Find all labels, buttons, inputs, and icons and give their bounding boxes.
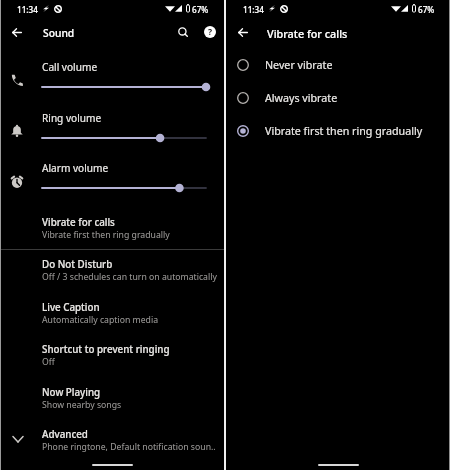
- staticText: Do Not Disturb: [42, 258, 113, 271]
- staticText: 11:34: [17, 4, 38, 15]
- button[interactable]: Now Playing: [0, 377, 224, 419]
- button[interactable]: Search: [169, 18, 197, 46]
- button[interactable]: Vibrate for calls: [0, 207, 224, 249]
- button[interactable]: Always vibrate: [226, 83, 450, 113]
- staticText: Vibrate for calls: [267, 26, 348, 41]
- button[interactable]: Advanced: [0, 419, 224, 461]
- staticText: Vibrate for calls: [42, 216, 115, 229]
- staticText: Always vibrate: [265, 91, 338, 106]
- staticText: 67%: [192, 4, 209, 15]
- button[interactable]: Help: [196, 18, 224, 46]
- staticText: Automatically caption media: [42, 314, 159, 326]
- staticText: Now Playing: [42, 386, 101, 399]
- staticText: Never vibrate: [265, 58, 333, 73]
- staticText: Sound: [43, 26, 75, 40]
- button[interactable]: Navigate up: [229, 18, 257, 46]
- button[interactable]: Alarm volume: [0, 150, 224, 196]
- staticText: 11:34: [243, 4, 264, 15]
- button[interactable]: Never vibrate: [226, 50, 450, 80]
- staticText: ?: [208, 26, 213, 38]
- staticText: Ring volume: [42, 111, 102, 125]
- staticText: Off / 3 schedules can turn on automatica…: [42, 271, 217, 283]
- staticText: Phone ringtone, Default notification sou…: [42, 441, 216, 453]
- staticText: Vibrate first then ring gradually: [42, 229, 170, 241]
- button[interactable]: Expand advanced: [9, 430, 27, 448]
- staticText: Advanced: [42, 428, 88, 441]
- staticText: 67%: [418, 4, 435, 15]
- button[interactable]: Ring volume: [0, 100, 224, 146]
- button[interactable]: Vibrate first then ring gradually: [226, 116, 450, 146]
- staticText: Show nearby songs: [42, 399, 122, 411]
- staticText: Shortcut to prevent ringing: [42, 343, 170, 356]
- button[interactable]: Navigate up: [3, 18, 31, 46]
- button[interactable]: Shortcut to prevent ringing: [0, 334, 224, 376]
- staticText: Call volume: [42, 60, 98, 74]
- button[interactable]: Live Caption: [0, 292, 224, 334]
- staticText: Vibrate first then ring gradually: [265, 124, 423, 139]
- staticText: Off: [42, 356, 55, 368]
- button[interactable]: Do Not Disturb: [0, 249, 224, 291]
- staticText: Live Caption: [42, 301, 100, 314]
- button[interactable]: Call volume: [0, 49, 224, 95]
- staticText: Alarm volume: [42, 161, 109, 175]
